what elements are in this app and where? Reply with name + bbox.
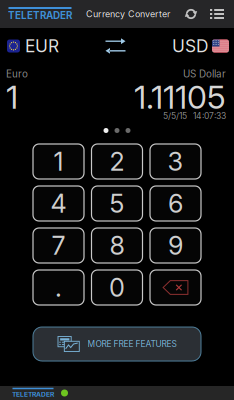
staticText: USD	[172, 35, 209, 56]
staticText: 3	[167, 146, 183, 177]
staticText: MORE FREE FEATURES	[87, 339, 176, 349]
button[interactable]: 6	[150, 186, 201, 221]
staticText: 5/5/15 14:07:33	[163, 111, 226, 121]
staticText: 1	[6, 78, 18, 116]
button[interactable]: 7	[33, 228, 84, 263]
staticText: Currency Converter	[86, 9, 170, 19]
staticText: 1	[53, 146, 63, 177]
staticText: Euro	[6, 68, 28, 80]
staticText: 6	[168, 188, 183, 219]
staticText: 8	[109, 230, 124, 261]
button[interactable]: 1	[33, 144, 84, 179]
staticText: 7	[51, 230, 65, 261]
button[interactable]: MORE FREE FEATURES	[33, 327, 201, 361]
staticText: 1.11105	[134, 78, 226, 116]
button[interactable]: Swap currencies	[105, 39, 125, 52]
button[interactable]: TeleTrader	[8, 7, 72, 21]
button[interactable]: 0	[91, 270, 142, 305]
button[interactable]: 5	[91, 186, 142, 221]
button[interactable]: Delete	[150, 270, 201, 305]
staticText: 9	[168, 230, 183, 261]
button[interactable]: .	[33, 270, 84, 305]
staticText: 5	[109, 188, 124, 219]
button[interactable]: 4	[33, 186, 84, 221]
button[interactable]: 8	[91, 228, 142, 263]
staticText: 0	[109, 272, 125, 303]
staticText: TELETRADER	[8, 9, 72, 21]
button[interactable]: 9	[150, 228, 201, 263]
staticText: TELETRADER	[12, 390, 54, 398]
button[interactable]: 2	[91, 144, 142, 179]
staticText: 2	[109, 146, 124, 177]
button[interactable]: Currency list	[210, 9, 224, 19]
staticText: .	[55, 272, 62, 303]
button[interactable]: EUR	[7, 35, 59, 56]
button[interactable]: Refresh rates	[184, 7, 198, 21]
staticText: EUR	[25, 35, 59, 56]
button[interactable]: 3	[150, 144, 201, 179]
staticText: 4	[50, 188, 66, 219]
button[interactable]: USD	[172, 35, 229, 56]
staticText: US Dollar	[183, 68, 226, 80]
